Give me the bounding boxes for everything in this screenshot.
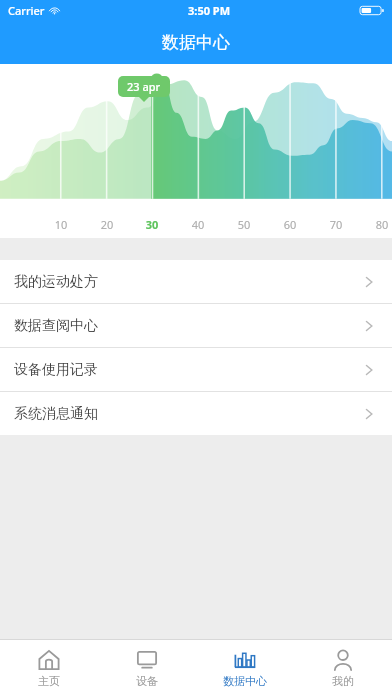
button[interactable]: 主页 [0, 640, 98, 696]
staticText: 3:50 PM [188, 3, 231, 18]
button[interactable]: 数据查阅中心 [0, 304, 392, 347]
staticText: 60 [276, 217, 304, 232]
staticText: 设备使用记录 [14, 361, 98, 379]
button[interactable]: 设备使用记录 [0, 348, 392, 391]
staticText: 10 [47, 217, 75, 232]
staticText: 主页 [38, 674, 60, 688]
staticText: Carrier [8, 3, 45, 18]
staticText: 数据中心 [223, 674, 267, 688]
button[interactable]: 我的 [294, 640, 392, 696]
staticText: 70 [322, 217, 350, 232]
button[interactable]: 我的运动处方 [0, 260, 392, 303]
button[interactable]: 设备 [98, 640, 196, 696]
staticText: 我的运动处方 [14, 273, 98, 291]
staticText: 50 [230, 217, 258, 232]
button[interactable]: 数据中心 [196, 640, 294, 696]
staticText: 80 [368, 217, 392, 232]
staticText: 数据查阅中心 [14, 317, 98, 335]
button[interactable]: 系统消息通知 [0, 392, 392, 435]
staticText: 20 [93, 217, 121, 232]
staticText: 数据中心 [162, 32, 230, 53]
staticText: 40 [184, 217, 212, 232]
staticText: 设备 [136, 674, 158, 688]
staticText: 我的 [332, 674, 354, 688]
staticText: 30 [138, 217, 166, 232]
staticText: 系统消息通知 [14, 405, 98, 423]
staticText: 23 apr [127, 79, 161, 94]
